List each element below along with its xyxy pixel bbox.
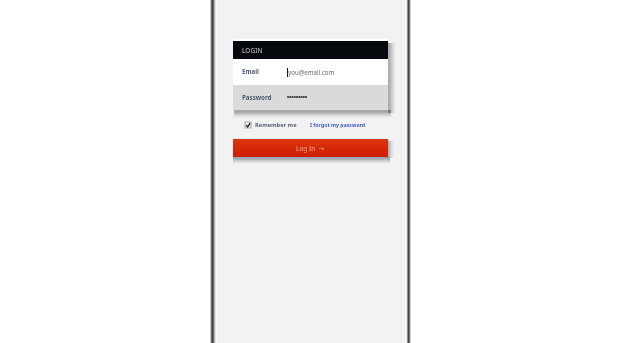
staticText: Email <box>242 67 259 75</box>
staticText: Log In → <box>296 144 325 153</box>
button[interactable]: Remember me <box>245 120 297 129</box>
staticText: I forgot my password <box>310 121 366 128</box>
staticText: you@email.com <box>288 68 335 76</box>
button[interactable]: I forgot my password <box>310 120 366 129</box>
button[interactable]: Email <box>233 59 388 85</box>
staticText: Password <box>242 93 272 101</box>
button[interactable]: Log In → <box>233 139 388 157</box>
button[interactable]: Password <box>233 85 388 110</box>
staticText: LOGIN <box>242 46 263 55</box>
staticText: Remember me <box>255 121 297 129</box>
